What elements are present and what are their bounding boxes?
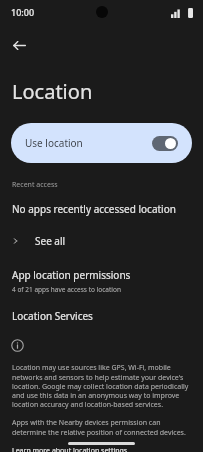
staticText: No apps recently accessed location [12,202,176,216]
button[interactable]: Learn more about location settings. [0,446,140,452]
staticText: App location permissions [12,268,131,282]
staticText: Location [12,78,93,105]
button[interactable]: See all [0,230,203,252]
staticText: Use location [25,136,83,150]
button[interactable]: Back [4,30,34,60]
button[interactable]: Location Services [0,309,203,323]
staticText: 4 of 21 apps have access to location [12,285,121,294]
staticText: Learn more about location settings. [12,446,130,452]
staticText: See all [35,234,66,248]
button[interactable]: Use location [11,123,192,163]
staticText: 10:00 [11,6,35,18]
staticText: Apps with the Nearby devices permission … [12,418,193,437]
staticText: Location Services [12,309,93,323]
staticText: Recent access [12,180,58,190]
staticText: Location may use sources like GPS, Wi-Fi… [12,363,193,409]
button[interactable]: App location permissions [0,268,203,294]
